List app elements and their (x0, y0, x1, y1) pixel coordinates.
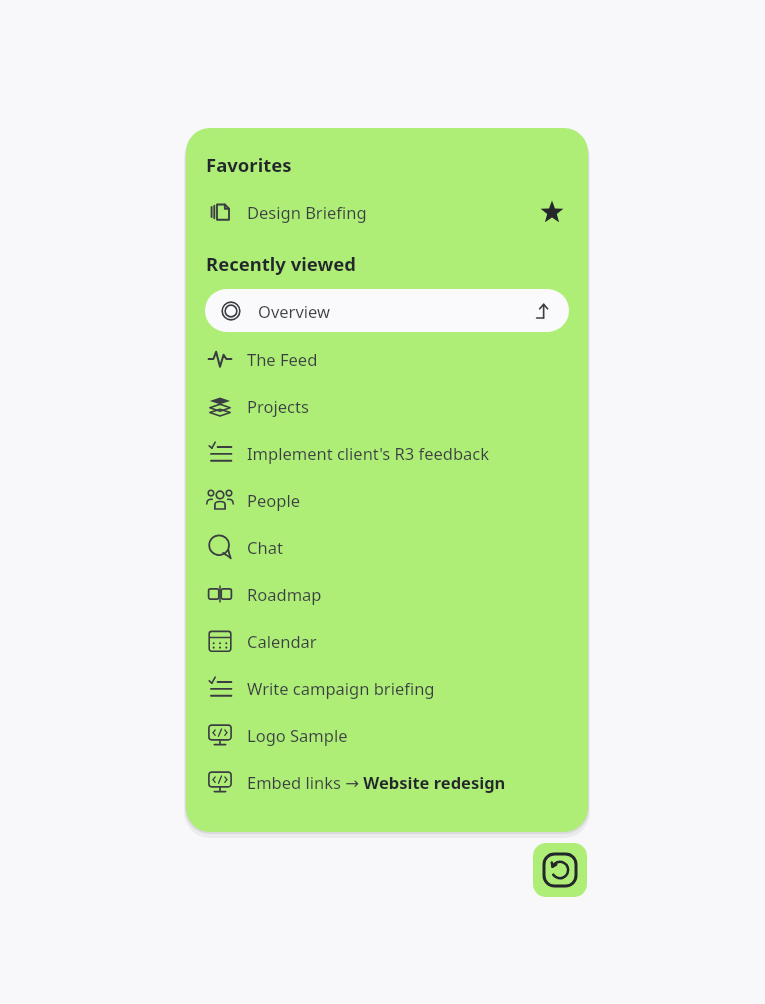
button[interactable]: People (186, 476, 588, 523)
other: Open Overview (526, 296, 556, 326)
button[interactable]: Refresh (533, 843, 587, 897)
staticText: Overview (258, 300, 330, 322)
staticText: Favorites (206, 152, 292, 177)
staticText: Implement client's R3 feedback (247, 442, 490, 464)
staticText: Logo Sample (247, 724, 348, 746)
button[interactable]: Overview (205, 289, 569, 332)
button[interactable]: Design Briefing (186, 191, 588, 233)
staticText: Roadmap (247, 583, 322, 605)
staticText: Write campaign briefing (247, 677, 435, 699)
button[interactable]: Unfavorite Design Briefing (534, 194, 570, 230)
staticText: Projects (247, 395, 309, 417)
button[interactable]: Roadmap (186, 570, 588, 617)
staticText: The Feed (247, 348, 318, 370)
staticText: Recently viewed (206, 251, 357, 276)
button[interactable]: The Feed (186, 335, 588, 382)
button[interactable]: Logo Sample (186, 711, 588, 758)
staticText: Calendar (247, 630, 317, 652)
staticText: Embed links → Website redesign (247, 771, 506, 793)
staticText: People (247, 489, 300, 511)
button[interactable]: Chat (186, 523, 588, 570)
button[interactable]: Write campaign briefing (186, 664, 588, 711)
button[interactable]: Implement client's R3 feedback (186, 429, 588, 476)
button[interactable]: Projects (186, 382, 588, 429)
button[interactable]: Calendar (186, 617, 588, 664)
staticText: Design Briefing (247, 201, 367, 223)
button[interactable]: Embed links → Website redesign (186, 758, 588, 805)
staticText: Chat (247, 536, 283, 558)
